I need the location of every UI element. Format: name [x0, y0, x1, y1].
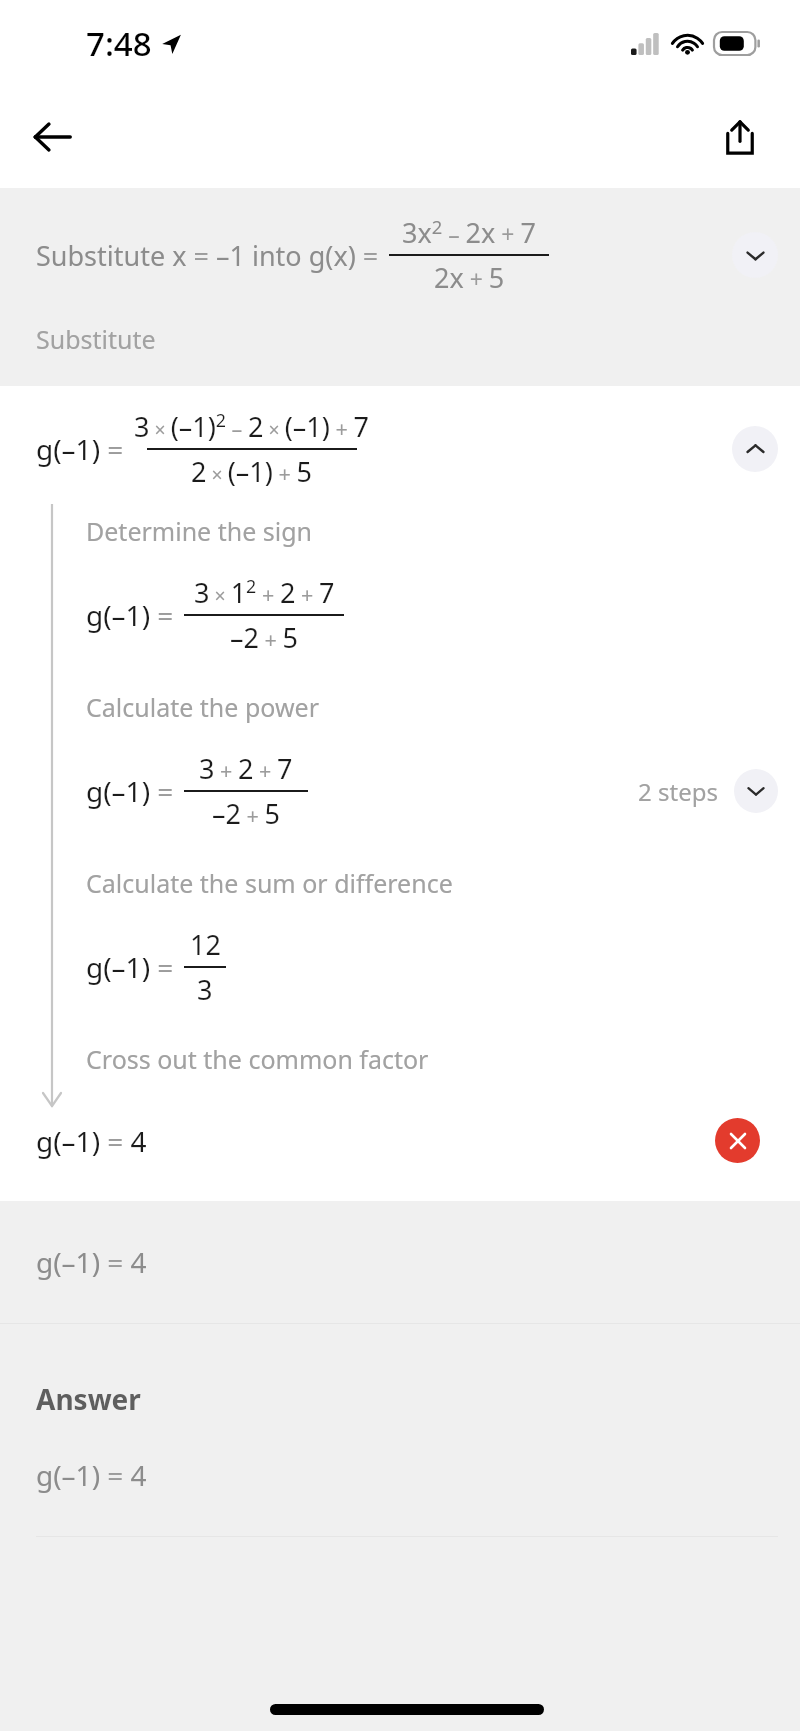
button[interactable]: g(–1) =: [86, 926, 778, 1008]
staticText: g(–1) =: [86, 596, 174, 634]
button[interactable]: Collapse step: [732, 426, 778, 472]
staticText: Calculate the sum or difference: [86, 866, 453, 900]
staticText: 3 × 12 + 2 + 7: [194, 574, 335, 611]
staticText: 2 × (–1) + 5: [191, 453, 312, 490]
staticText: Substitute x = –1 into g(x) =: [36, 237, 379, 274]
button[interactable]: Share: [710, 107, 770, 167]
staticText: 2x + 5: [434, 259, 505, 296]
staticText: 3 + 2 + 7: [199, 750, 293, 787]
staticText: g(–1) =: [86, 948, 174, 986]
staticText: 3 × (–1)2 – 2 × (–1) + 7: [134, 408, 369, 445]
staticText: g(–1) =: [36, 430, 124, 468]
button[interactable]: Incorrect: [715, 1118, 760, 1163]
button[interactable]: Back: [22, 107, 82, 167]
button[interactable]: g(–1) = 4: [0, 1201, 800, 1323]
staticText: Answer: [36, 1380, 141, 1418]
button[interactable]: Expand step: [732, 232, 778, 278]
staticText: 3: [197, 971, 213, 1008]
button[interactable]: Show 2 steps: [734, 769, 778, 813]
staticText: g(–1) = 4: [36, 1243, 147, 1281]
staticText: g(–1) = 4: [36, 1456, 147, 1494]
staticText: –2 + 5: [230, 619, 298, 656]
button[interactable]: g(–1) =: [0, 386, 800, 504]
staticText: 2 steps: [638, 775, 718, 808]
button[interactable]: g(–1) =: [86, 750, 778, 832]
staticText: Determine the sign: [86, 514, 313, 548]
staticText: 3x2 – 2x + 7: [402, 214, 536, 251]
staticText: –2 + 5: [212, 795, 280, 832]
button[interactable]: g(–1) = 4: [0, 1110, 800, 1201]
button[interactable]: Substitute x = –1 into g(x) =: [0, 188, 800, 386]
button[interactable]: g(–1) =: [86, 574, 778, 656]
staticText: 12: [190, 926, 221, 963]
staticText: g(–1) = 4: [36, 1122, 715, 1160]
staticText: Calculate the power: [86, 690, 319, 724]
staticText: 7:48: [86, 21, 152, 66]
staticText: Substitute: [36, 322, 156, 356]
staticText: g(–1) =: [86, 772, 174, 810]
staticText: Cross out the common factor: [86, 1042, 429, 1076]
